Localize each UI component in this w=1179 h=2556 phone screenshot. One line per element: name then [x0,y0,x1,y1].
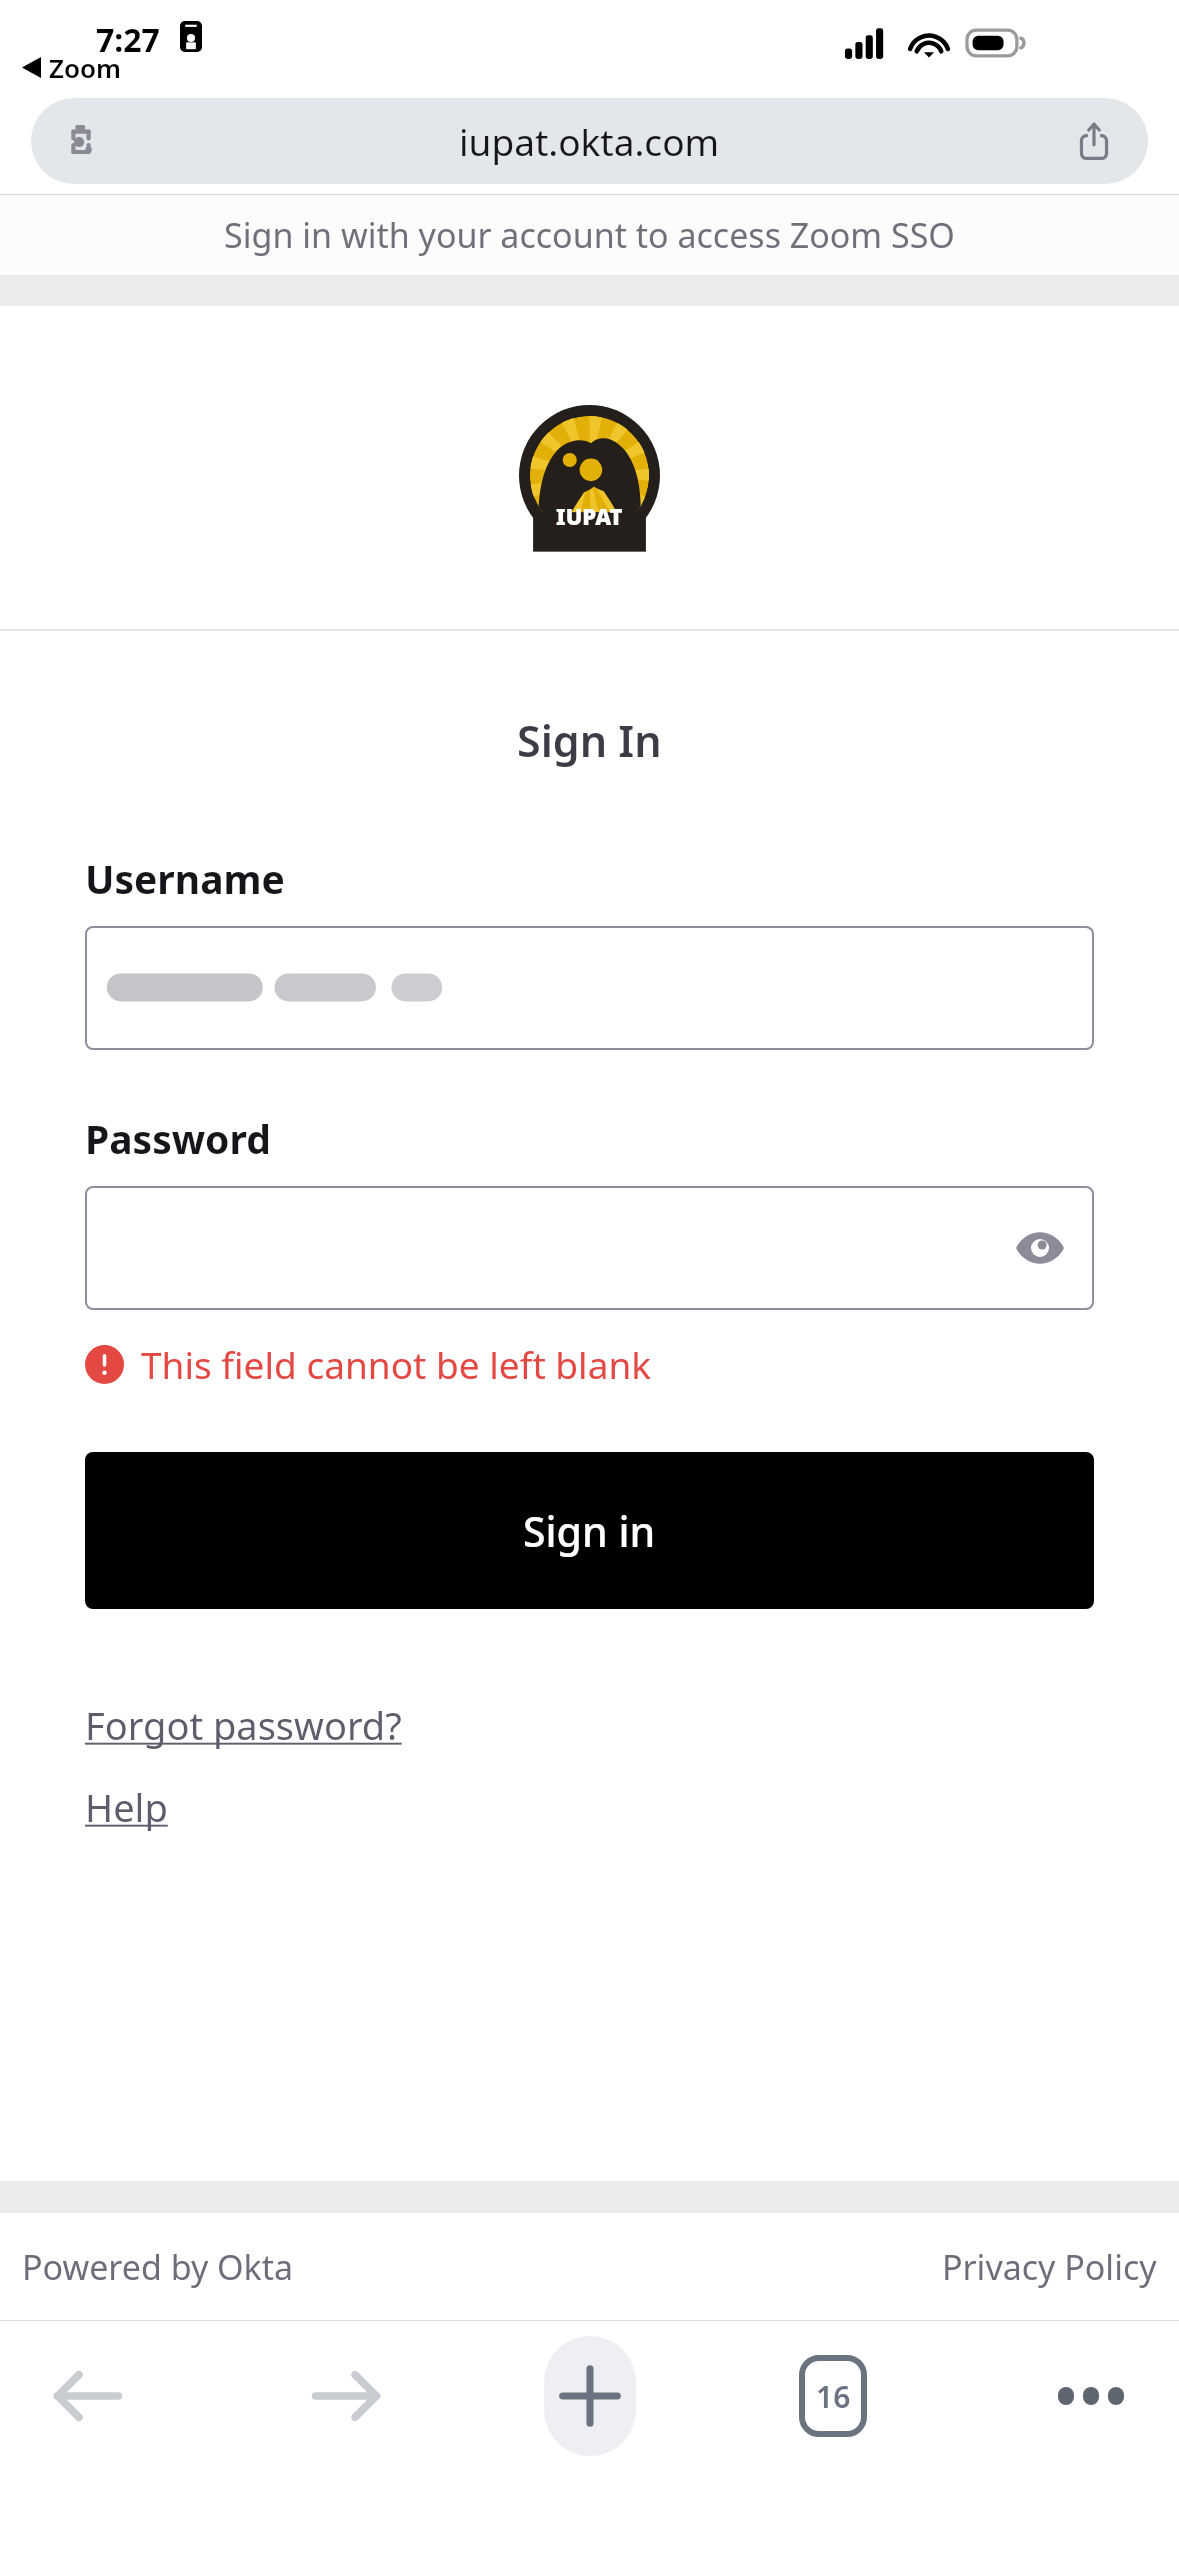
staticText: Sign in with your account to access Zoom… [224,212,955,258]
staticText: iupat.okta.com [459,116,720,166]
button[interactable]: Privacy Policy [942,2244,1157,2290]
staticText: This field cannot be left blank [141,1339,652,1389]
button[interactable] [85,926,1094,1050]
button[interactable]: Back [28,2336,148,2456]
staticText: Zoom [49,50,122,85]
staticText: Password [85,1112,271,1165]
button[interactable]: Sign in [85,1452,1094,1609]
button[interactable]: Forward [286,2336,406,2456]
button[interactable]: Forgot password? [85,1699,402,1751]
button[interactable]: New tab [544,2336,636,2456]
staticText: Sign In [517,711,662,770]
staticText: 16 [816,2376,851,2417]
staticText: IUPAT [556,501,623,531]
button[interactable]: Back to Zoom [22,50,122,85]
staticText: 7:27 [96,18,160,62]
button[interactable]: More [1031,2336,1151,2456]
button[interactable]: Show password [1010,1218,1070,1278]
button[interactable]: Page settings [31,98,1148,184]
button[interactable]: Page settings [57,117,105,165]
button[interactable]: Tabs, 16 open [773,2336,893,2456]
button[interactable]: Help [85,1781,168,1833]
staticText: Username [85,852,285,905]
staticText: Sign in [523,1503,656,1559]
button[interactable]: Powered by Okta [22,2244,294,2290]
button[interactable]: Share [1070,117,1118,165]
button[interactable]: Show password [85,1186,1094,1310]
